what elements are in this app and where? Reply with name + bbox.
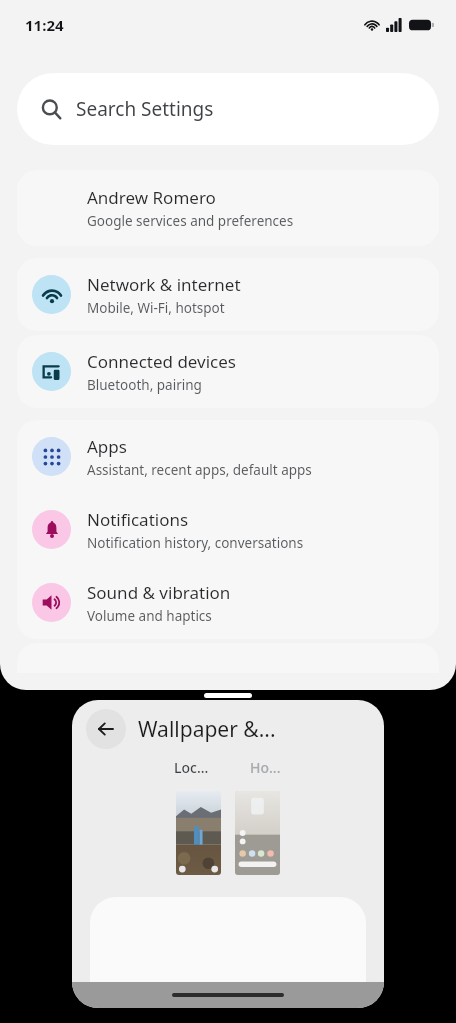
staticText: Apps [87,435,127,458]
staticText: 11:24 [25,15,64,35]
button[interactable] [176,791,221,875]
staticText: Google services and preferences [87,212,294,230]
staticText: Sound & vibration [87,581,231,604]
button[interactable]: Apps [17,420,439,493]
staticText: Assistant, recent apps, default apps [87,461,312,479]
button[interactable]: Ho... [237,758,293,777]
button[interactable]: Andrew Romero [17,170,439,246]
button[interactable]: Connected devices [17,335,439,408]
staticText: Andrew Romero [87,186,216,209]
staticText: Notification history, conversations [87,534,304,552]
staticText: Bluetooth, pairing [87,376,202,394]
staticText: Volume and haptics [87,607,212,625]
staticText: Network & internet [87,273,241,296]
staticText: Search Settings [76,96,214,122]
staticText: Connected devices [87,350,237,373]
staticText: Ho... [250,758,281,777]
staticText: Loc... [174,758,209,777]
staticText: Wallpaper &... [138,715,276,744]
staticText: Mobile, Wi-Fi, hotspot [87,299,225,317]
button[interactable] [235,791,280,875]
button[interactable]: Loc... [163,758,219,777]
button[interactable]: Notifications [17,493,439,566]
button[interactable]: Search Settings [17,73,439,145]
button[interactable]: Sound & vibration [17,566,439,639]
staticText: Notifications [87,508,189,531]
button[interactable]: Network & internet [17,258,439,331]
button[interactable]: Back [86,709,126,749]
